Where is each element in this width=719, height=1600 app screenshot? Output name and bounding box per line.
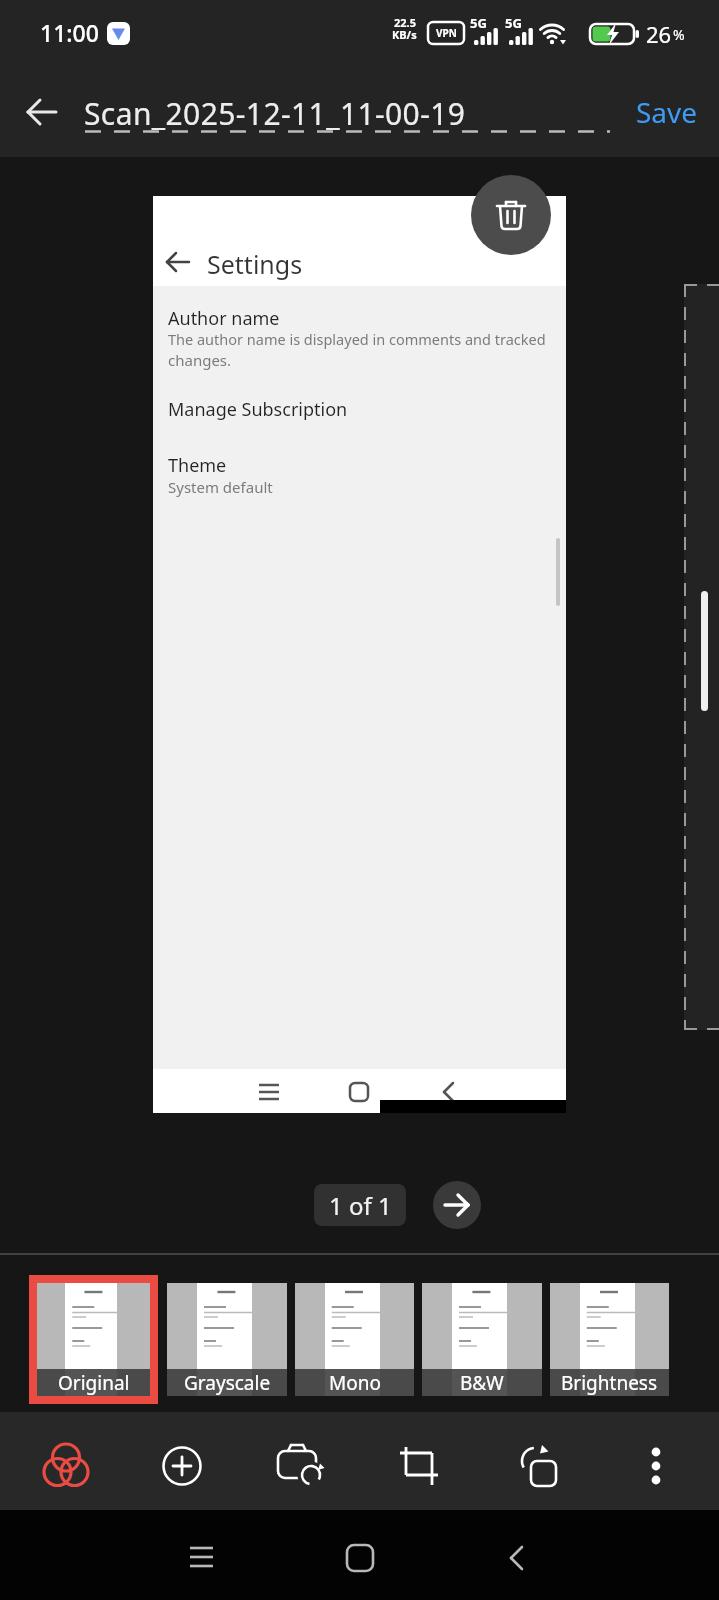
- button[interactable]: B&W: [422, 1283, 542, 1396]
- button[interactable]: [474, 1516, 558, 1600]
- button[interactable]: Mono: [295, 1283, 414, 1396]
- staticText: System default: [168, 477, 273, 497]
- staticText: 11:00: [40, 17, 99, 48]
- button[interactable]: Save: [622, 86, 712, 138]
- button[interactable]: Grayscale: [167, 1283, 287, 1396]
- staticText: VPN: [436, 26, 457, 40]
- button[interactable]: [264, 1430, 336, 1502]
- staticText: Theme: [168, 453, 227, 478]
- staticText: Original: [58, 1370, 130, 1396]
- button[interactable]: [146, 1430, 218, 1502]
- staticText: KB/s: [392, 27, 417, 42]
- staticText: 1 of 1: [329, 1189, 392, 1222]
- staticText: 22.5: [394, 15, 416, 30]
- staticText: B&W: [460, 1370, 504, 1396]
- staticText: Grayscale: [184, 1370, 271, 1396]
- staticText: The author name is displayed in comments…: [168, 329, 546, 349]
- button[interactable]: [30, 1430, 102, 1502]
- staticText: %: [673, 25, 685, 44]
- button[interactable]: [471, 175, 551, 255]
- button[interactable]: [160, 1516, 244, 1600]
- staticText: 26: [646, 19, 672, 49]
- staticText: Save: [636, 93, 698, 131]
- staticText: 5G: [505, 14, 522, 32]
- button[interactable]: [16, 86, 68, 138]
- button[interactable]: Brightness: [550, 1283, 669, 1396]
- staticText: Manage Subscription: [168, 397, 348, 422]
- staticText: Author name: [168, 306, 280, 331]
- button[interactable]: [318, 1516, 402, 1600]
- staticText: Settings: [207, 247, 303, 281]
- button[interactable]: [620, 1430, 692, 1502]
- staticText: Mono: [329, 1370, 381, 1396]
- button[interactable]: [433, 1181, 481, 1229]
- staticText: Brightness: [561, 1370, 658, 1396]
- staticText: changes.: [168, 350, 232, 370]
- button[interactable]: [501, 1430, 573, 1502]
- staticText: 5G: [470, 14, 487, 32]
- button[interactable]: Original: [37, 1283, 150, 1396]
- button[interactable]: [383, 1430, 455, 1502]
- staticText: Scan_2025-12-11_11-00-19: [84, 93, 466, 134]
